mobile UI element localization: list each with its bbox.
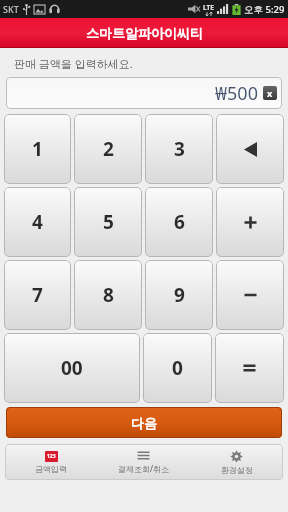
button[interactable]: Backspace [216,114,284,184]
button[interactable]: 다음 [6,407,282,438]
staticText: 3 [174,136,185,162]
button[interactable]: 8 [74,260,142,330]
staticText: 5 [103,209,114,235]
staticText: 판매 금액을 입력하세요. [14,56,133,71]
staticText: 2 [103,136,114,162]
staticText: 123 [47,453,56,460]
staticText: 1 [32,136,43,162]
button[interactable]: 00 [4,333,140,403]
button[interactable] [215,333,284,403]
button[interactable]: 9 [145,260,213,330]
staticText: 0 [172,355,183,381]
button[interactable] [216,187,284,257]
button[interactable]: 결제조회/취소 [97,444,190,480]
staticText: 다음 [131,415,157,431]
button[interactable]: 3 [145,114,213,184]
button[interactable]: 7 [4,260,71,330]
button[interactable]: 0 [143,333,212,403]
button[interactable]: Clear amount [263,86,277,100]
button[interactable] [216,260,284,330]
staticText: 오후 5:29 [244,3,285,16]
staticText: 9 [174,282,185,308]
staticText: 00 [61,355,83,381]
button[interactable]: ₩500 [6,77,282,109]
button[interactable]: 2 [74,114,142,184]
staticText: x [267,87,273,99]
staticText: SKT [3,3,19,15]
staticText: 스마트알파아이씨티 [86,25,203,41]
button[interactable]: 123 [5,444,97,480]
staticText: 7 [32,282,43,308]
staticText: 6 [174,209,185,235]
button[interactable]: 5 [74,187,142,257]
staticText: 8 [103,282,114,308]
staticText: LTE [203,3,214,12]
staticText: 금액입력 [35,464,67,474]
staticText: 결제조회/취소 [118,463,170,474]
staticText: ₩500 [215,81,258,106]
button[interactable]: 6 [145,187,213,257]
button[interactable]: 4 [4,187,71,257]
button[interactable]: 환경설정 [190,444,283,480]
staticText: 4 [32,209,43,235]
button[interactable]: 1 [4,114,71,184]
staticText: 환경설정 [221,465,253,475]
